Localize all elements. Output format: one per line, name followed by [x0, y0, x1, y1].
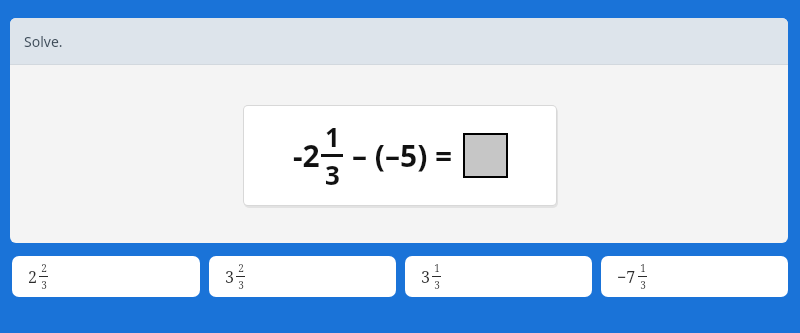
staticText: 3	[325, 157, 340, 192]
staticText: 2	[28, 266, 37, 288]
staticText: 3	[238, 278, 244, 292]
button[interactable]: 3	[405, 256, 592, 297]
button[interactable]: 2	[12, 256, 200, 297]
button[interactable]: 3	[209, 256, 396, 297]
staticText: 1	[640, 261, 646, 275]
staticText: 3	[421, 266, 430, 288]
staticText: 3	[225, 266, 234, 288]
staticText: 3	[640, 278, 646, 292]
staticText: – (–5) =	[352, 135, 453, 176]
staticText: 2	[238, 261, 244, 275]
staticText: -2	[293, 135, 320, 176]
button[interactable]: −7	[601, 256, 788, 297]
staticText: 1	[434, 261, 440, 275]
staticText: −7	[617, 266, 636, 288]
staticText: 3	[434, 278, 440, 292]
staticText: 3	[41, 278, 47, 292]
staticText: Solve.	[24, 32, 63, 51]
staticText: 2	[41, 261, 47, 275]
staticText: 1	[325, 119, 340, 154]
